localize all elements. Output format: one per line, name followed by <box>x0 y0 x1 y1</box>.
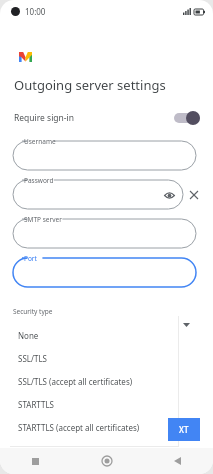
button[interactable]: Username <box>13 141 196 170</box>
staticText: Outgoing server settings <box>14 76 166 94</box>
button[interactable]: Require sign-in toggle <box>174 111 200 125</box>
staticText: SMTP server <box>24 215 62 224</box>
button[interactable]: Clear password <box>187 188 201 202</box>
staticText: STARTTLS (accept all certificates) <box>18 422 140 433</box>
button[interactable]: SMTP server <box>13 219 196 248</box>
button[interactable]: STARTTLS <box>10 393 178 416</box>
staticText: Port <box>24 254 37 263</box>
button[interactable]: Back <box>142 448 213 474</box>
staticText: SSL/TLS (accept all certificates) <box>18 376 133 387</box>
staticText: Username <box>24 137 56 146</box>
button[interactable]: SSL/TLS <box>10 347 178 370</box>
button[interactable]: SSL/TLS (accept all certificates) <box>10 370 178 393</box>
button[interactable]: XT <box>168 418 200 441</box>
staticText: Password <box>24 176 54 185</box>
button[interactable]: Home <box>71 448 142 474</box>
staticText: SSL/TLS <box>18 353 47 364</box>
staticText: None <box>18 330 39 341</box>
button[interactable]: Require sign-in <box>0 107 213 129</box>
button[interactable]: None <box>10 324 178 347</box>
staticText: 10:00 <box>25 6 46 17</box>
button[interactable]: STARTTLS (accept all certificates) <box>10 416 178 439</box>
button[interactable]: Show password <box>163 189 175 201</box>
staticText: STARTTLS <box>18 399 55 410</box>
button[interactable]: Recents <box>0 448 71 474</box>
staticText: Require sign-in <box>14 112 75 124</box>
button[interactable]: Open security type dropdown <box>180 319 192 331</box>
button[interactable]: Password <box>13 180 183 209</box>
button[interactable]: Port <box>13 258 196 287</box>
staticText: XT <box>179 424 189 435</box>
staticText: Security type <box>13 307 53 316</box>
